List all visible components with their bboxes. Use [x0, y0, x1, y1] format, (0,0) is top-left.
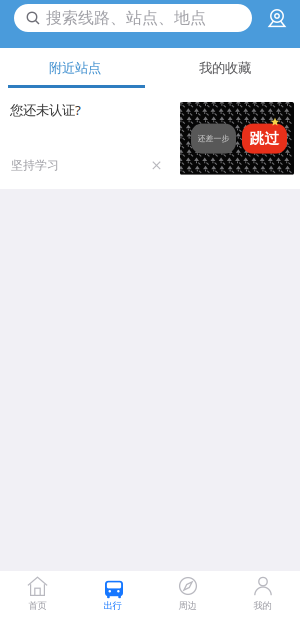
staticText: 首页 — [28, 600, 46, 611]
button[interactable]: 搜索线路、站点、地点 — [14, 4, 252, 32]
staticText: 出行 — [103, 600, 121, 611]
staticText: 我的收藏 — [199, 60, 251, 76]
staticText: 周边 — [178, 600, 196, 611]
staticText: 搜索线路、站点、地点 — [46, 8, 206, 28]
button[interactable]: 周边 — [150, 571, 225, 625]
button[interactable]: 我的收藏 — [150, 48, 300, 88]
button[interactable]: Advertisement — [180, 102, 294, 175]
staticText: 您还未认证? — [10, 101, 81, 119]
staticText: 我的 — [253, 600, 271, 611]
button[interactable]: 附近站点 — [0, 48, 150, 88]
staticText: 跳过 — [249, 130, 279, 148]
button[interactable]: 我的 — [225, 571, 300, 625]
staticText: 还差一步 — [197, 134, 229, 143]
button[interactable]: Close — [152, 161, 161, 170]
button[interactable]: 出行 — [75, 571, 150, 625]
button[interactable]: 首页 — [0, 571, 75, 625]
button[interactable]: Location — [266, 8, 287, 29]
staticText: 附近站点 — [49, 60, 101, 76]
staticText: 坚持学习 — [11, 158, 59, 173]
